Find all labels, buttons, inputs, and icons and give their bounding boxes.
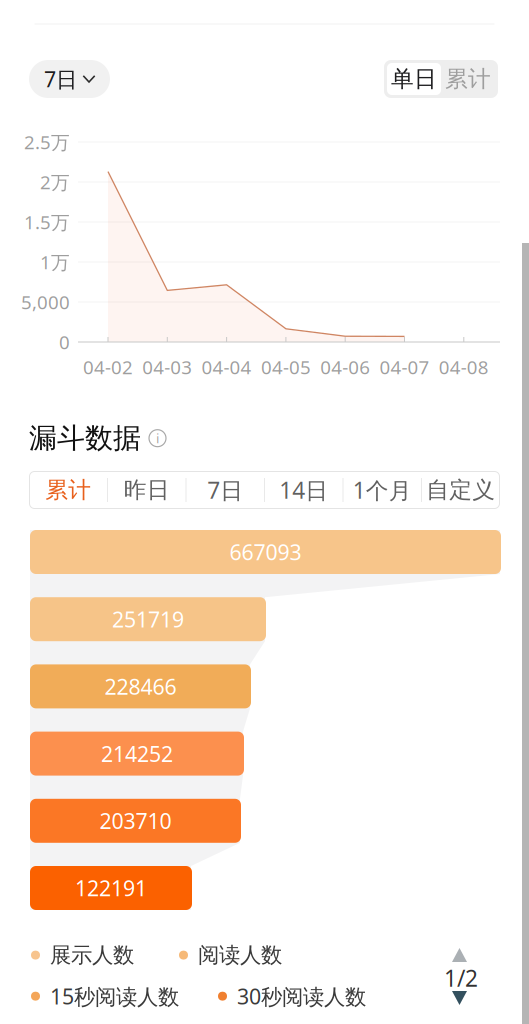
staticText: 累计 (45, 476, 91, 504)
button[interactable]: 累计 (441, 63, 495, 95)
staticText: 04-04 (202, 355, 252, 379)
button[interactable]: 122191 (30, 866, 192, 910)
staticText: 214252 (101, 739, 173, 768)
staticText: 展示人数 (50, 942, 134, 968)
button[interactable]: 14日 (265, 471, 342, 508)
staticText: 251719 (112, 605, 184, 633)
staticText: 1/2 (444, 963, 478, 993)
button[interactable]: 251719 (30, 597, 266, 641)
staticText: 7日 (44, 65, 77, 93)
staticText: 15秒阅读人数 (50, 982, 179, 1010)
staticText: 667093 (229, 538, 301, 566)
staticText: 阅读人数 (198, 942, 282, 968)
staticText: 04-05 (261, 355, 311, 379)
staticText: 累计 (445, 65, 491, 93)
staticText: i (156, 429, 159, 447)
button[interactable]: 667093 (30, 530, 501, 574)
button[interactable]: 下一页 (452, 991, 467, 1005)
button[interactable]: 1个月 (343, 471, 421, 508)
button[interactable]: 上一页 (452, 948, 467, 962)
button[interactable]: 单日 (387, 63, 441, 95)
staticText: 漏斗数据 (29, 421, 141, 455)
staticText: 1万 (40, 250, 70, 274)
button[interactable]: 累计 (29, 471, 107, 508)
staticText: 0 (59, 330, 70, 354)
staticText: 04-02 (83, 355, 133, 379)
staticText: 14日 (279, 475, 328, 505)
staticText: 04-06 (320, 355, 370, 379)
staticText: 单日 (391, 65, 437, 93)
staticText: 昨日 (124, 476, 170, 504)
staticText: 04-08 (439, 355, 489, 379)
staticText: 30秒阅读人数 (237, 982, 366, 1010)
staticText: 1.5万 (24, 210, 70, 234)
staticText: 228466 (104, 672, 176, 700)
button[interactable]: 7日 (29, 60, 110, 98)
staticText: 1个月 (353, 475, 412, 505)
button[interactable]: 203710 (30, 799, 241, 843)
staticText: 自定义 (426, 476, 495, 504)
staticText: 2.5万 (24, 130, 70, 154)
staticText: 2万 (40, 170, 70, 194)
button[interactable]: 昨日 (108, 471, 185, 508)
staticText: 7日 (207, 475, 243, 505)
staticText: 122191 (75, 874, 147, 902)
button[interactable]: 自定义 (422, 471, 499, 508)
staticText: 04-07 (379, 355, 429, 379)
staticText: 5,000 (21, 290, 70, 314)
button[interactable]: 7日 (186, 471, 264, 508)
staticText: 203710 (99, 807, 171, 835)
button[interactable]: 228466 (30, 664, 251, 708)
button[interactable]: 214252 (30, 732, 244, 776)
staticText: 04-03 (142, 355, 192, 379)
button[interactable]: 关于漏斗数据 (149, 430, 166, 447)
